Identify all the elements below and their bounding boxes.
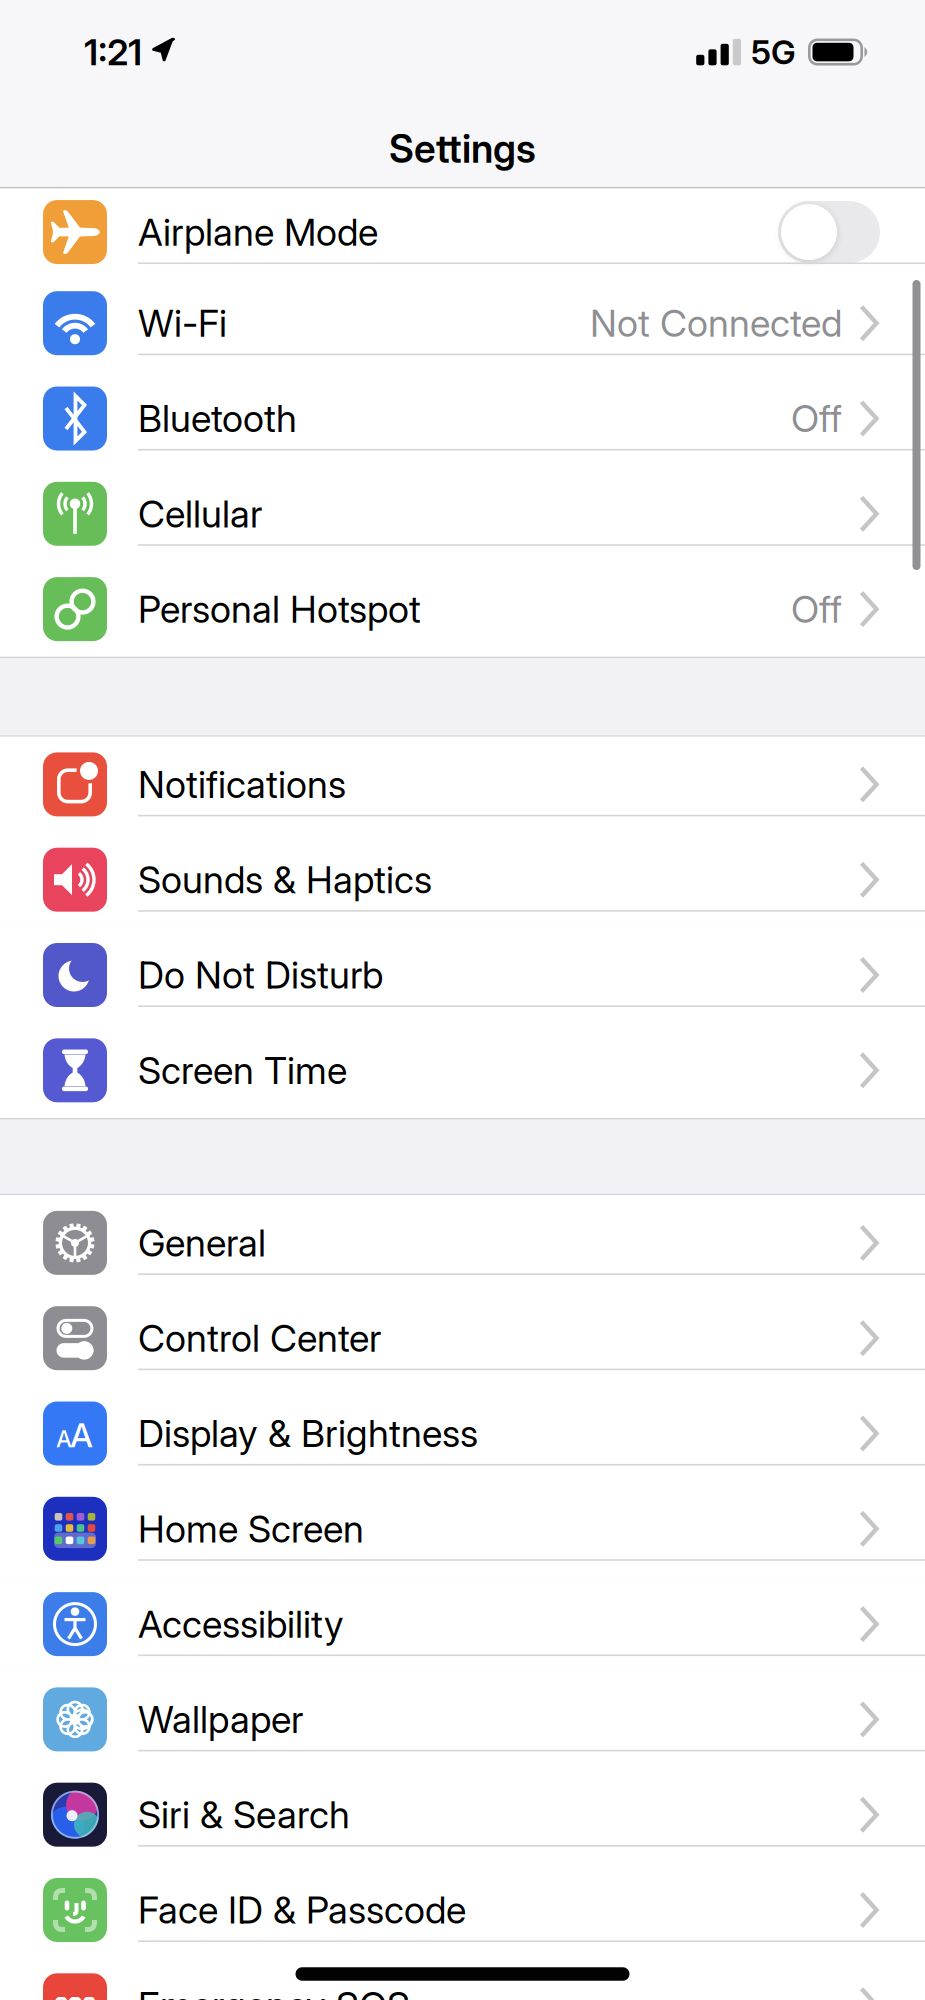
button[interactable]: Personal Hotspot xyxy=(0,561,925,657)
staticText: Wi-Fi xyxy=(138,301,227,345)
staticText: Cellular xyxy=(138,492,262,536)
staticText: Settings xyxy=(389,126,536,172)
staticText: Home Screen xyxy=(138,1507,364,1551)
staticText: Wallpaper xyxy=(138,1697,303,1741)
staticText: Do Not Disturb xyxy=(138,953,383,997)
button[interactable]: Airplane Mode xyxy=(778,201,880,263)
staticText: Airplane Mode xyxy=(138,210,378,254)
staticText: Face ID & Passcode xyxy=(138,1888,466,1932)
button[interactable]: Control Center xyxy=(0,1290,925,1386)
staticText: 1:21 xyxy=(84,31,142,73)
staticText: Siri & Search xyxy=(138,1793,350,1837)
staticText: SOS xyxy=(54,1992,95,2000)
staticText: Control Center xyxy=(138,1316,381,1360)
button[interactable]: Sounds & Haptics xyxy=(0,832,925,927)
button[interactable]: Face ID & Passcode xyxy=(0,1862,925,1958)
staticText: Accessibility xyxy=(138,1602,344,1646)
staticText: 5G xyxy=(751,32,796,72)
staticText: Sounds & Haptics xyxy=(138,858,432,902)
staticText: Bluetooth xyxy=(138,396,297,440)
staticText: Not Connected xyxy=(590,301,842,345)
button[interactable]: SOS xyxy=(0,1958,925,2000)
button[interactable]: Wallpaper xyxy=(0,1672,925,1767)
staticText: A xyxy=(70,1415,93,1455)
button[interactable]: Bluetooth xyxy=(0,371,925,466)
button[interactable]: Notifications xyxy=(0,737,925,832)
button[interactable]: Home Screen xyxy=(0,1481,925,1576)
staticText: Off xyxy=(791,396,842,440)
button[interactable]: Siri & Search xyxy=(0,1767,925,1862)
staticText: Emergency SOS xyxy=(138,1983,410,2000)
staticText: Screen Time xyxy=(138,1048,347,1092)
staticText: Display & Brightness xyxy=(138,1411,478,1455)
button[interactable]: Cellular xyxy=(0,466,925,561)
staticText: General xyxy=(138,1221,266,1265)
button[interactable]: Accessibility xyxy=(0,1576,925,1672)
button[interactable]: Screen Time xyxy=(0,1023,925,1118)
staticText: Off xyxy=(791,587,842,631)
button[interactable]: A xyxy=(0,1386,925,1481)
button[interactable]: Airplane Mode xyxy=(0,189,925,276)
button[interactable]: Do Not Disturb xyxy=(0,927,925,1023)
button[interactable]: General xyxy=(0,1195,925,1290)
button[interactable]: Wi-Fi xyxy=(0,276,925,371)
staticText: Personal Hotspot xyxy=(138,587,421,631)
staticText: A xyxy=(56,1426,72,1452)
staticText: Notifications xyxy=(138,762,346,806)
